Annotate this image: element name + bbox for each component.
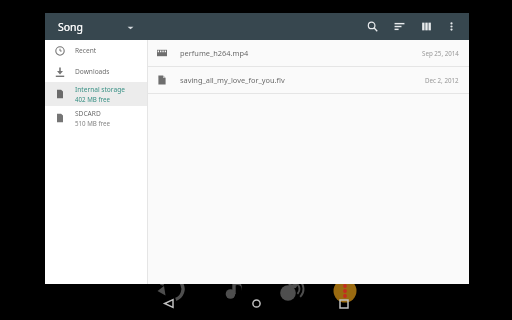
button[interactable]: Recent xyxy=(45,40,147,61)
button[interactable]: saving_all_my_love_for_you.flv xyxy=(148,67,469,93)
button[interactable]: Song xyxy=(56,16,136,38)
button[interactable]: Downloads xyxy=(45,61,147,82)
button[interactable]: Recent apps xyxy=(327,287,361,320)
staticText: Recent xyxy=(75,46,97,55)
staticText: Song xyxy=(58,20,84,34)
staticText: SDCARD xyxy=(75,109,101,118)
staticText: Sep 25, 2014 xyxy=(422,49,459,57)
staticText: perfume_h264.mp4 xyxy=(180,48,249,58)
staticText: saving_all_my_love_for_you.flv xyxy=(180,75,285,85)
staticText: Internal storage xyxy=(75,85,125,94)
button[interactable]: Grid view xyxy=(416,16,437,37)
button[interactable]: SDCARD xyxy=(45,106,147,130)
button[interactable]: Home xyxy=(239,287,273,320)
button[interactable]: More options xyxy=(441,16,462,37)
button[interactable]: Search xyxy=(362,16,383,37)
button[interactable]: Internal storage xyxy=(45,82,147,106)
button[interactable]: perfume_h264.mp4 xyxy=(148,40,469,66)
staticText: Dec 2, 2012 xyxy=(425,76,459,84)
button[interactable]: Sort xyxy=(389,16,410,37)
staticText: 510 MB free xyxy=(75,119,111,127)
button[interactable]: Back xyxy=(151,287,185,320)
staticText: 402 MB free xyxy=(75,95,111,103)
staticText: Downloads xyxy=(75,67,110,76)
